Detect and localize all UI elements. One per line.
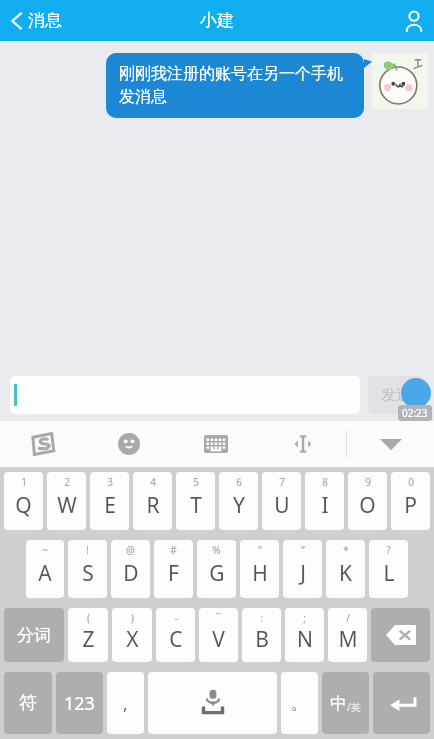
staticText: 。 xyxy=(291,693,308,714)
staticText: T xyxy=(190,491,202,520)
staticText: # xyxy=(170,543,177,557)
button[interactable]: , xyxy=(107,672,144,734)
staticText: ! xyxy=(86,543,89,557)
button[interactable]: ? xyxy=(369,540,408,598)
staticText: C xyxy=(169,625,183,654)
staticText: J xyxy=(300,559,306,588)
button[interactable]: / xyxy=(328,608,367,662)
button[interactable]: 。 xyxy=(281,672,318,734)
button[interactable]: ” xyxy=(283,540,322,598)
staticText: 符 xyxy=(19,692,37,715)
button[interactable]: 分词 xyxy=(4,608,64,662)
staticText: K xyxy=(339,559,352,588)
button[interactable]: Space xyxy=(148,672,277,734)
button[interactable]: ( xyxy=(68,608,108,662)
button[interactable]: 消息 xyxy=(0,6,72,35)
staticText: : xyxy=(260,611,263,625)
button[interactable]: 发送 xyxy=(368,376,424,414)
button[interactable]: “ xyxy=(240,540,279,598)
button[interactable] xyxy=(372,53,428,109)
staticText: 消息 xyxy=(28,10,62,31)
button[interactable]: ) xyxy=(112,608,152,662)
staticText: 6 xyxy=(236,475,242,489)
button[interactable]: ~ xyxy=(26,540,64,598)
staticText: D xyxy=(123,559,139,588)
button[interactable] xyxy=(10,376,360,414)
staticText: V xyxy=(212,625,225,654)
staticText: 7 xyxy=(279,475,285,489)
button[interactable]: 8 xyxy=(305,472,344,530)
button[interactable]: - xyxy=(156,608,195,662)
staticText: ) xyxy=(131,611,134,625)
staticText: S xyxy=(82,559,94,588)
staticText: Y xyxy=(233,491,245,520)
button[interactable]: ¯ xyxy=(199,608,238,662)
staticText: , xyxy=(123,692,128,715)
staticText: X xyxy=(126,625,139,654)
staticText: F xyxy=(168,559,179,588)
button[interactable]: Backspace xyxy=(371,608,430,662)
staticText: 刚刚我注册的账号在另一个手机发消息 xyxy=(119,64,351,107)
button[interactable]: 刚刚我注册的账号在另一个手机发消息 xyxy=(106,53,364,118)
button[interactable]: 9 xyxy=(348,472,387,530)
button[interactable]: 符 xyxy=(4,672,52,734)
staticText: 发送 xyxy=(381,386,411,405)
staticText: 8 xyxy=(322,475,328,489)
button[interactable]: 中 xyxy=(322,672,369,734)
staticText: / xyxy=(346,611,350,625)
staticText: Q xyxy=(15,491,32,520)
button[interactable]: 5 xyxy=(176,472,215,530)
button[interactable]: * xyxy=(326,540,365,598)
button[interactable]: Enter xyxy=(373,672,430,734)
button[interactable]: 2 xyxy=(47,472,86,530)
staticText: 0 xyxy=(408,475,414,489)
staticText: 小建 xyxy=(200,10,234,31)
staticText: I xyxy=(321,491,329,520)
staticText: M xyxy=(338,625,358,654)
staticText: * xyxy=(343,543,349,557)
button[interactable]: Keyboard xyxy=(172,421,259,467)
button[interactable]: 1 xyxy=(4,472,43,530)
button[interactable]: Sogou xyxy=(0,421,86,467)
staticText: % xyxy=(212,543,221,557)
staticText: 9 xyxy=(365,475,371,489)
staticText: H xyxy=(252,559,268,588)
staticText: L xyxy=(383,559,395,588)
button[interactable]: 7 xyxy=(262,472,301,530)
button[interactable]: 123 xyxy=(56,672,103,734)
staticText: ¯ xyxy=(216,611,221,625)
staticText: U xyxy=(274,491,290,520)
staticText: 4 xyxy=(150,475,156,489)
button[interactable]: : xyxy=(242,608,281,662)
button[interactable]: 4 xyxy=(133,472,172,530)
button[interactable]: @ xyxy=(111,540,150,598)
button[interactable]: Move cursor xyxy=(259,421,346,467)
staticText: W xyxy=(57,491,77,520)
staticText: 5 xyxy=(193,475,199,489)
button[interactable]: % xyxy=(197,540,236,598)
staticText: 2 xyxy=(64,475,70,489)
staticText: B xyxy=(255,625,269,654)
staticText: ” xyxy=(301,543,305,557)
staticText: /英 xyxy=(347,700,361,714)
button[interactable]: 3 xyxy=(90,472,129,530)
button[interactable]: Hide keyboard xyxy=(347,421,434,467)
button[interactable]: 0 xyxy=(391,472,430,530)
button[interactable]: ! xyxy=(68,540,107,598)
button[interactable]: Profile xyxy=(393,0,434,41)
staticText: Z xyxy=(82,625,95,654)
staticText: A xyxy=(38,559,52,588)
staticText: - xyxy=(174,611,178,625)
staticText: “ xyxy=(258,543,262,557)
button[interactable]: Emoji xyxy=(86,421,172,467)
button[interactable]: ; xyxy=(285,608,324,662)
staticText: 中 xyxy=(330,693,347,714)
staticText: R xyxy=(146,491,160,520)
button[interactable]: # xyxy=(154,540,193,598)
staticText: ? xyxy=(386,543,391,557)
staticText: 123 xyxy=(64,691,95,716)
staticText: 分词 xyxy=(17,625,51,646)
button[interactable]: 6 xyxy=(219,472,258,530)
staticText: 3 xyxy=(107,475,113,489)
staticText: N xyxy=(297,625,313,654)
